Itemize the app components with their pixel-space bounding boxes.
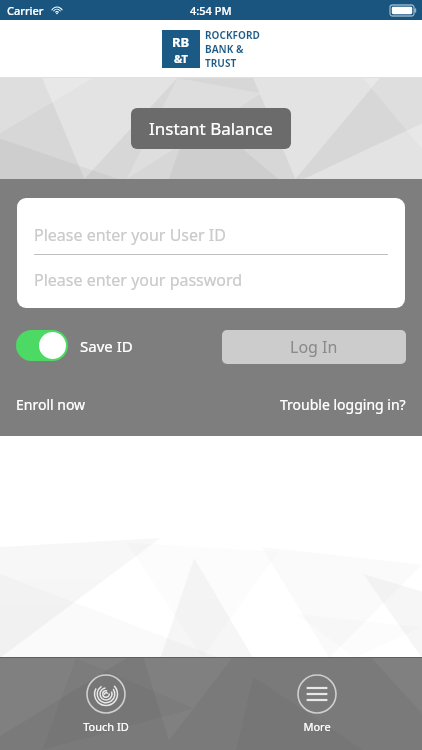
staticText: TRUST — [205, 56, 237, 70]
staticText: Instant Balance — [149, 117, 273, 140]
staticText: Save ID — [80, 336, 133, 356]
staticText: RB — [172, 33, 190, 51]
button[interactable]: Touch ID — [67, 670, 145, 738]
staticText: More — [303, 719, 331, 734]
staticText: &T — [174, 51, 188, 66]
button[interactable]: Trouble logging in? — [272, 391, 414, 418]
button[interactable]: Please enter your User ID — [17, 216, 405, 254]
staticText: Trouble logging in? — [280, 395, 406, 414]
staticText: Touch ID — [83, 719, 129, 734]
button[interactable]: Please enter your password — [17, 260, 405, 300]
button[interactable]: Instant Balance — [131, 108, 291, 149]
button[interactable]: Log In — [222, 330, 406, 364]
staticText: Log In — [290, 336, 338, 358]
staticText: ROCKFORD — [205, 28, 260, 42]
button[interactable]: Save ID — [16, 330, 133, 361]
staticText: BANK & — [205, 42, 244, 56]
button[interactable]: Enroll now — [8, 391, 94, 418]
staticText: 4:54 PM — [190, 3, 232, 18]
staticText: Enroll now — [16, 395, 86, 414]
staticText: Please enter your User ID — [34, 224, 226, 246]
button[interactable]: More — [281, 670, 353, 738]
staticText: Carrier — [7, 3, 44, 18]
staticText: Please enter your password — [34, 269, 243, 291]
